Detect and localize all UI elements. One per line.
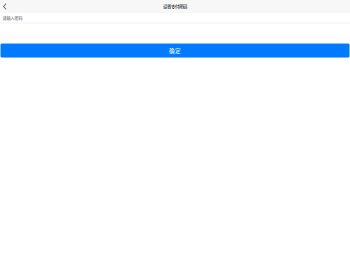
button[interactable]: 请输入密码 (1, 13, 348, 22)
staticText: 请输入密码 (2, 15, 22, 21)
staticText: 确定 (169, 46, 181, 54)
button[interactable]: 确定 (0, 43, 349, 57)
staticText: 设置支付密码 (163, 3, 187, 10)
button[interactable]: Back (0, 0, 14, 13)
